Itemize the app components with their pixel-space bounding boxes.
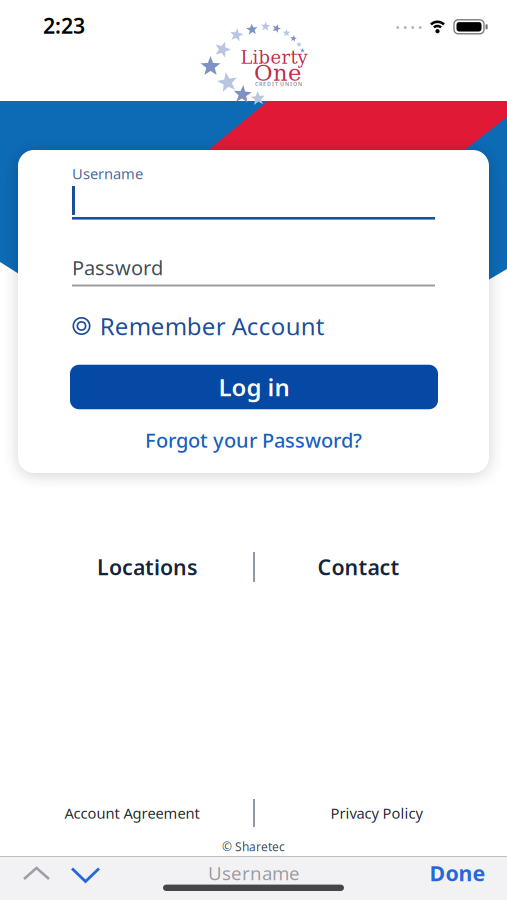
staticText: C R E D I T U N I O N: [255, 80, 302, 88]
button[interactable]: Done: [423, 859, 491, 887]
staticText: Username: [72, 164, 143, 183]
staticText: Account Agreement: [64, 803, 199, 823]
button[interactable]: Previous field: [18, 862, 55, 885]
staticText: One: [254, 60, 301, 86]
staticText: Done: [429, 859, 485, 887]
staticText: Locations: [97, 553, 198, 581]
button[interactable]: Forgot your Password?: [145, 427, 362, 453]
button[interactable]: Privacy Policy: [330, 803, 422, 823]
staticText: Contact: [317, 553, 399, 581]
staticText: Forgot your Password?: [145, 427, 362, 453]
button[interactable]: Locations: [97, 553, 198, 581]
staticText: Log in: [218, 371, 289, 403]
staticText: Username: [208, 861, 300, 885]
staticText: © Sharetec: [222, 838, 285, 854]
staticText: Password: [72, 254, 163, 281]
button[interactable]: Log in: [70, 365, 438, 409]
button[interactable]: Next field: [66, 862, 105, 887]
staticText: Remember Account: [100, 310, 325, 342]
staticText: Liberty: [240, 47, 307, 68]
staticText: 2:23: [43, 11, 85, 40]
staticText: Privacy Policy: [330, 803, 422, 823]
button[interactable]: Account Agreement: [64, 803, 199, 823]
button[interactable]: Remember Account: [73, 310, 325, 342]
button[interactable]: Contact: [317, 553, 399, 581]
